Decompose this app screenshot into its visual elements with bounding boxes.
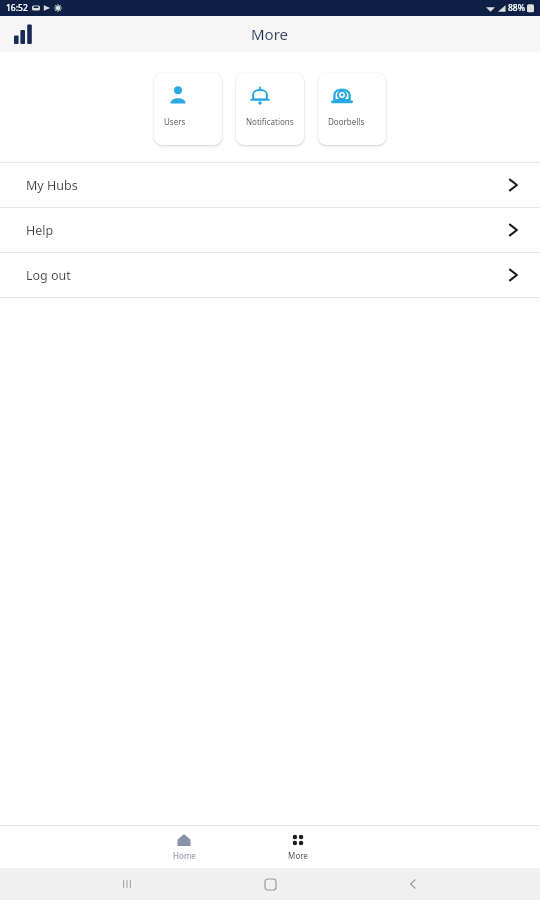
button[interactable]: Recents [111,868,143,900]
button[interactable]: Help [0,208,540,252]
button[interactable]: Users [154,73,222,145]
staticText: Log out [26,267,71,284]
button[interactable]: My Hubs [0,163,540,207]
staticText: More [288,850,308,861]
button[interactable]: Home [156,826,212,868]
staticText: Doorbells [328,116,380,127]
staticText: More [251,24,289,44]
staticText: Help [26,222,54,239]
staticText: Home [173,850,196,861]
staticText: My Hubs [26,177,78,194]
staticText: 88% [508,2,525,14]
button[interactable]: More [270,826,326,868]
staticText: 16:52 [6,2,28,14]
button[interactable]: Home [254,868,286,900]
staticText: Notifications [246,116,298,127]
button[interactable]: Notifications [236,73,304,145]
button[interactable]: Log out [0,253,540,297]
button[interactable]: Logo [8,18,40,50]
button[interactable]: Back [397,868,429,900]
staticText: Users [164,116,216,127]
button[interactable]: Doorbells [318,73,386,145]
